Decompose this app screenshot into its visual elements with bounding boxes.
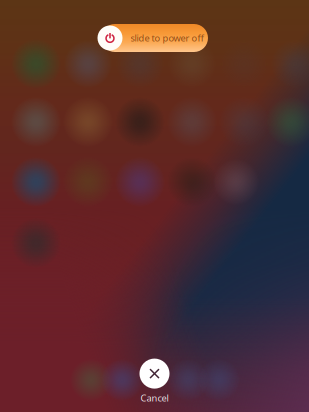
staticText: Cancel [140,392,168,404]
button[interactable]: slide to power off [101,24,208,52]
button[interactable]: Cancel [139,359,169,404]
staticText: slide to power off [130,32,203,44]
